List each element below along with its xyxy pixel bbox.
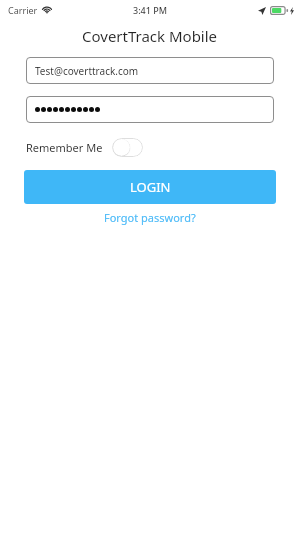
other: Location <box>258 7 266 15</box>
button[interactable]: Remember Me <box>112 138 143 157</box>
staticText: 3:41 PM <box>133 4 167 16</box>
button[interactable]: Forgot password? <box>96 207 204 228</box>
button[interactable]: Test@coverttrack.com <box>26 57 274 84</box>
staticText: LOGIN <box>130 178 171 196</box>
staticText: Carrier <box>8 4 38 16</box>
staticText: Forgot password? <box>104 210 196 225</box>
staticText: CovertTrack Mobile <box>82 26 218 46</box>
staticText: Remember Me <box>26 140 103 155</box>
button[interactable]: LOGIN <box>24 170 276 204</box>
button[interactable] <box>26 96 274 123</box>
staticText: Test@coverttrack.com <box>35 64 139 78</box>
